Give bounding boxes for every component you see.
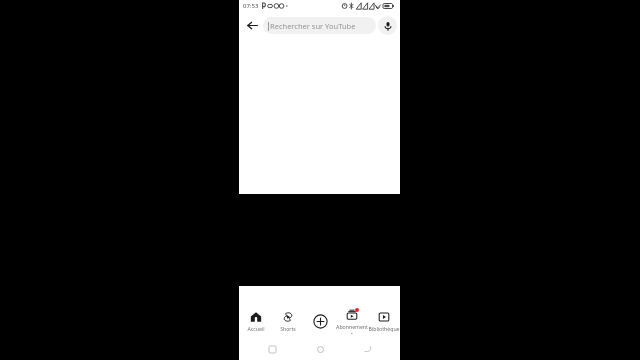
button[interactable]: Create <box>304 308 336 334</box>
button[interactable]: Accueil <box>239 308 272 334</box>
button[interactable]: Shorts <box>272 308 304 334</box>
staticText: Bibliothèque <box>368 325 400 332</box>
button[interactable]: Bibliothèque <box>368 308 400 334</box>
button[interactable]: Rechercher sur YouTube <box>263 17 376 34</box>
staticText: Rechercher sur YouTube <box>270 21 356 31</box>
staticText: Shorts <box>280 325 296 332</box>
button[interactable]: Back <box>241 14 263 36</box>
button[interactable]: Recents <box>263 340 281 358</box>
staticText: 07:53 <box>243 2 259 10</box>
button[interactable]: Abonnements <box>336 308 368 334</box>
staticText: Abonnements <box>336 323 368 334</box>
button[interactable]: Home <box>311 340 329 358</box>
button[interactable]: Back <box>359 340 377 358</box>
staticText: Accueil <box>247 325 265 332</box>
button[interactable]: Voice search <box>378 16 397 35</box>
